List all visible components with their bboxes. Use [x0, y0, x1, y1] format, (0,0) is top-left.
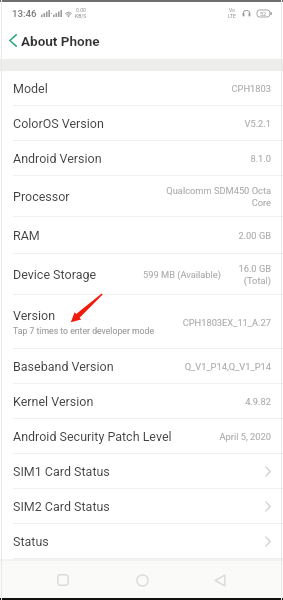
button[interactable]: Home — [126, 564, 158, 596]
button[interactable]: Baseband Version — [0, 349, 283, 384]
staticText: Android Security Patch Level — [13, 429, 172, 444]
button[interactable]: Processor — [0, 176, 283, 217]
staticText: 599 MB (Available) — [143, 269, 221, 280]
staticText: April 5, 2020 — [219, 431, 271, 442]
staticText: SIM2 Card Status — [13, 499, 110, 514]
button[interactable]: Device Storage — [0, 254, 283, 295]
button[interactable]: ColorOS Version — [0, 106, 283, 141]
button[interactable]: Kernel Version — [0, 384, 283, 419]
staticText: RAM — [13, 228, 40, 243]
staticText: Vo — [229, 7, 235, 13]
button[interactable]: SIM1 Card Status — [0, 454, 283, 489]
staticText: Kernel Version — [13, 394, 94, 409]
staticText: CPH1803 — [231, 83, 271, 94]
staticText: ColorOS Version — [13, 116, 104, 131]
staticText: Device Storage — [13, 267, 97, 282]
staticText: 16.0 GB (Total) — [229, 263, 271, 286]
staticText: 13:46 — [12, 8, 37, 19]
staticText: About Phone — [21, 33, 100, 49]
button[interactable]: Status — [0, 524, 283, 559]
staticText: 8.1.0 — [250, 153, 271, 164]
staticText: Q_V1_P14,Q_V1_P14 — [184, 361, 271, 372]
button[interactable]: Navigate up — [0, 22, 110, 59]
staticText: V5.2.1 — [244, 118, 271, 129]
staticText: KB/S — [75, 13, 87, 19]
staticText: Android Version — [13, 151, 102, 166]
staticText: Baseband Version — [13, 359, 114, 374]
staticText: 0.00 — [76, 7, 86, 13]
staticText: 52 — [260, 11, 267, 17]
staticText: Tap 7 times to enter developer mode — [13, 326, 155, 336]
staticText: Model — [13, 81, 48, 96]
staticText: SIM1 Card Status — [13, 464, 110, 479]
button[interactable]: Back — [204, 564, 236, 596]
staticText: 4.9.82 — [245, 396, 271, 407]
staticText: Processor — [13, 189, 70, 204]
staticText: 2.00 GB — [238, 230, 271, 241]
staticText: LTE — [228, 13, 236, 19]
staticText: Qualcomm SDM450 Octa Core — [165, 185, 271, 208]
staticText: Version — [13, 308, 56, 323]
button[interactable]: Android Version — [0, 141, 283, 176]
button[interactable]: Version — [0, 295, 283, 349]
button[interactable]: SIM2 Card Status — [0, 489, 283, 524]
button[interactable]: Model — [0, 71, 283, 106]
button[interactable]: Android Security Patch Level — [0, 419, 283, 454]
staticText: CPH1803EX_11_A.27 — [182, 317, 271, 328]
button[interactable]: Recent apps — [47, 564, 79, 596]
button[interactable]: RAM — [0, 217, 283, 254]
staticText: Status — [13, 534, 49, 549]
